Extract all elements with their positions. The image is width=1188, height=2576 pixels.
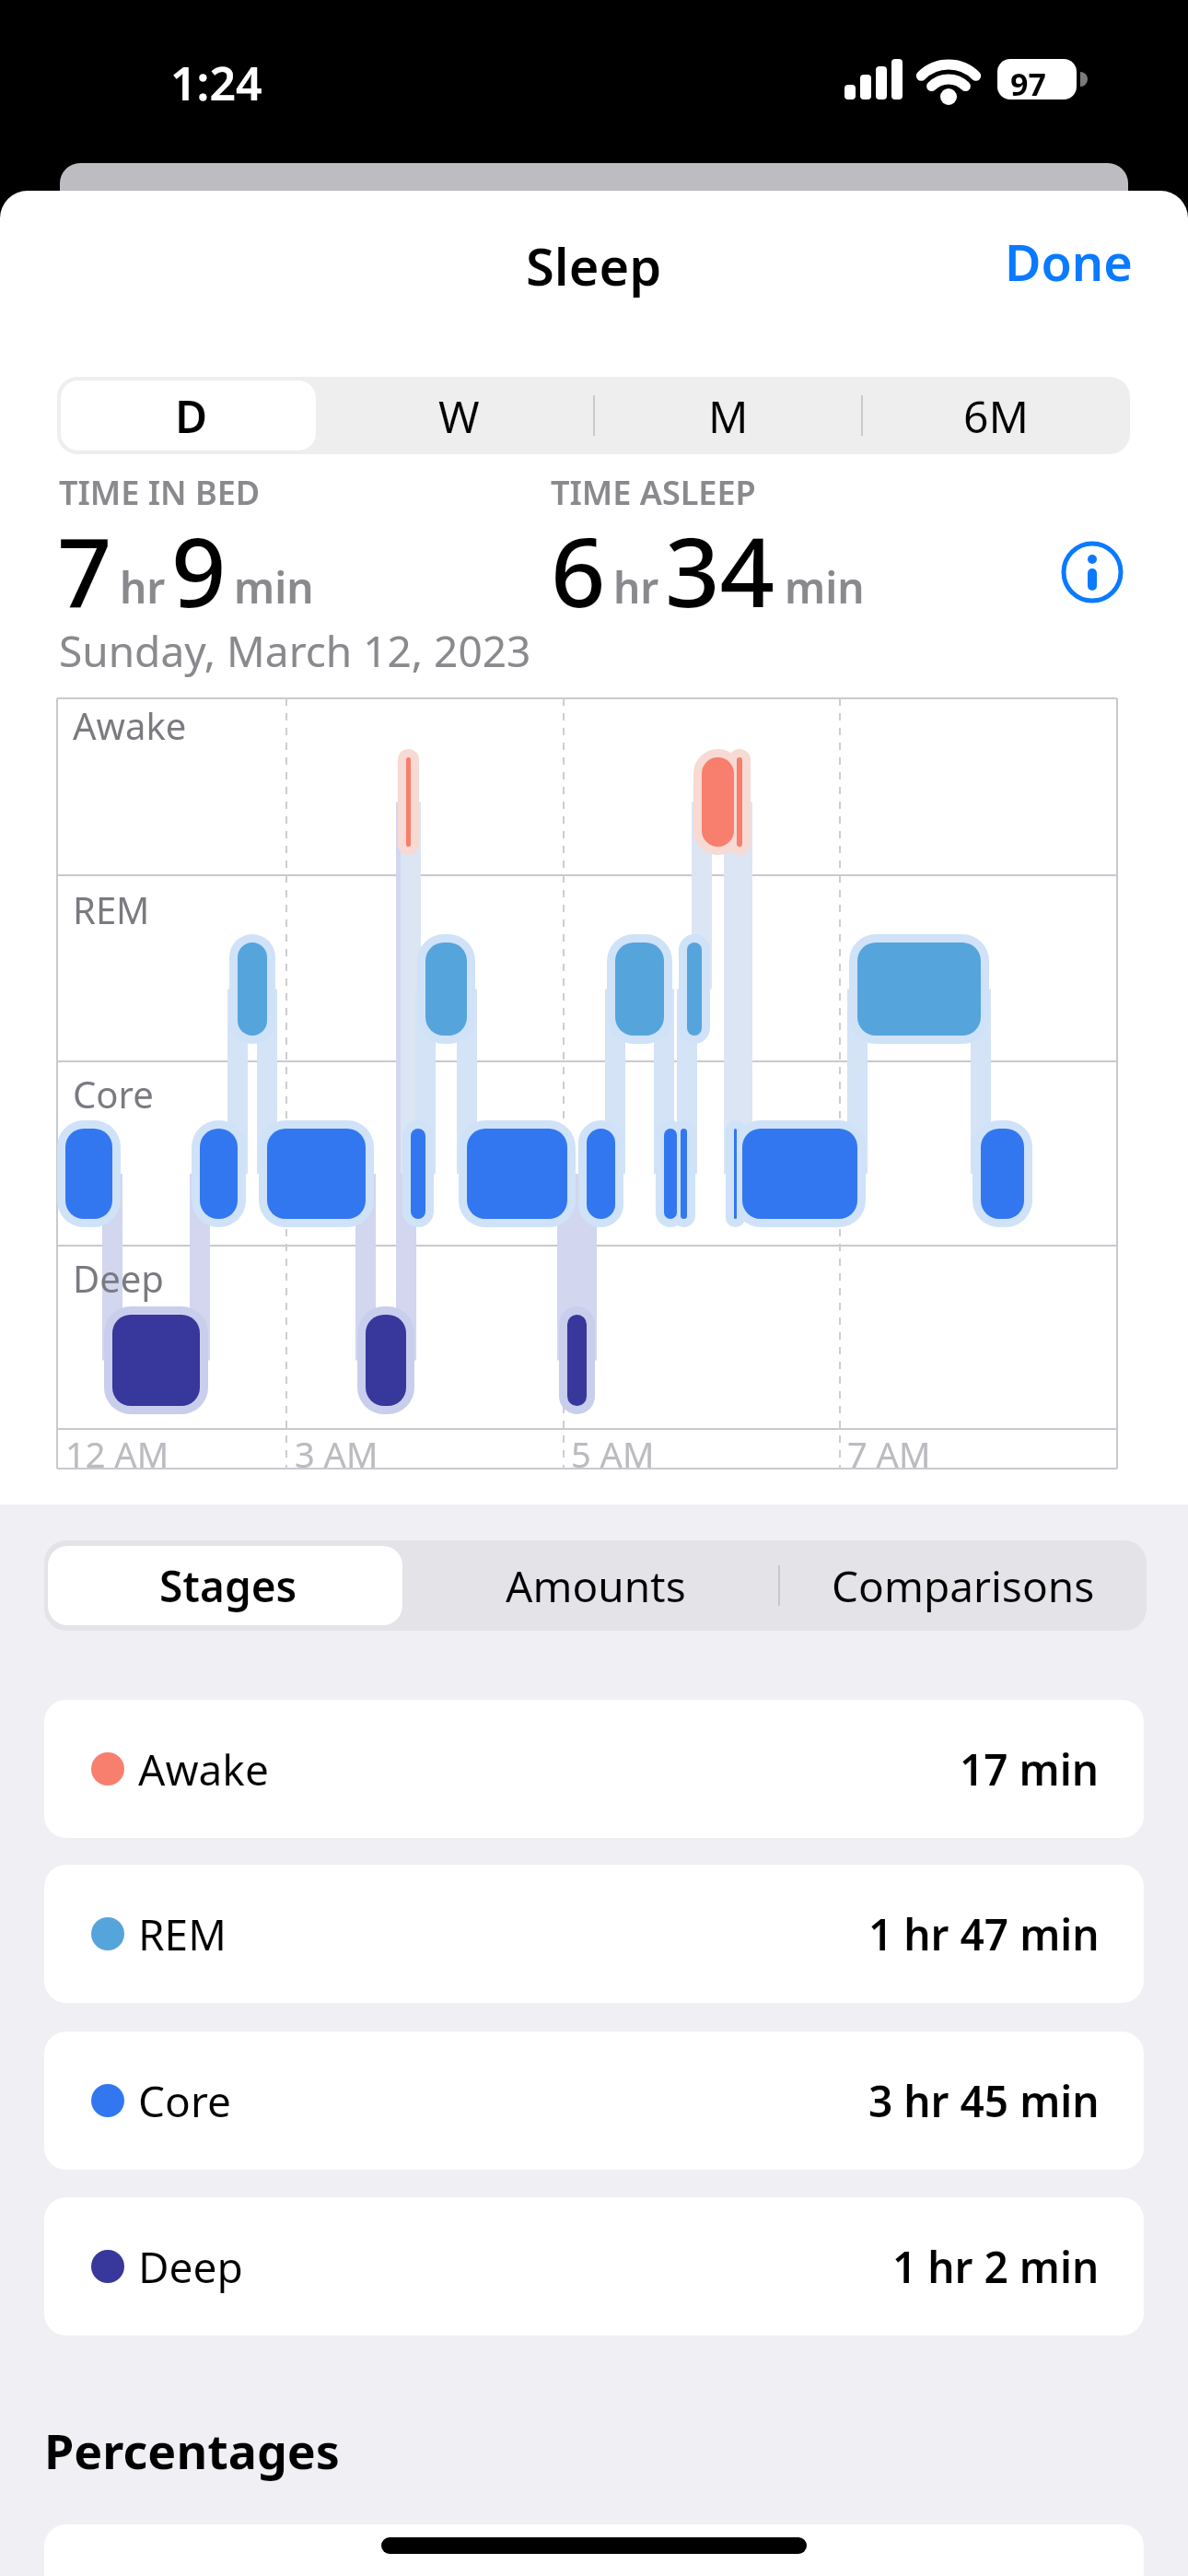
staticText: 34 (665, 505, 775, 636)
staticText: 1 hr 47 min (868, 1905, 1100, 1963)
staticText: 12 AM (65, 1430, 169, 1478)
button[interactable]: Comparisons (779, 1540, 1147, 1631)
staticText: 3 hr 45 min (868, 2072, 1100, 2130)
staticText: min (234, 558, 314, 616)
button[interactable]: Stages (44, 1540, 412, 1631)
staticText: TIME IN BED (59, 470, 261, 515)
button[interactable]: W (325, 377, 593, 454)
staticText: 3 AM (295, 1430, 379, 1478)
staticText: 6M (963, 386, 1029, 446)
staticText: D (175, 386, 208, 446)
staticText: min (785, 558, 865, 616)
staticText: TIME ASLEEP (551, 470, 756, 515)
button[interactable]: Amounts (412, 1540, 779, 1631)
staticText: 97 (1010, 63, 1046, 105)
staticText: 9 (171, 505, 227, 636)
staticText: REM (73, 884, 150, 934)
staticText: 7 (57, 505, 112, 636)
button[interactable]: Done (921, 223, 1133, 300)
staticText: Comparisons (832, 1557, 1095, 1615)
staticText: 7 AM (847, 1430, 931, 1478)
staticText: REM (138, 1905, 227, 1963)
staticText: Deep (73, 1253, 164, 1303)
button[interactable]: M (594, 377, 862, 454)
staticText: Percentages (44, 2418, 340, 2483)
staticText: hr (120, 558, 166, 616)
staticText: Sleep (526, 230, 662, 300)
staticText: Core (73, 1069, 154, 1118)
button[interactable]: 6M (862, 377, 1130, 454)
button[interactable]: D (57, 377, 325, 454)
staticText: Stages (159, 1557, 297, 1615)
staticText: W (438, 386, 480, 446)
staticText: Done (1005, 228, 1133, 296)
staticText: 5 AM (571, 1430, 655, 1478)
staticText: 6 (551, 505, 606, 636)
staticText: Awake (73, 700, 187, 750)
button[interactable]: REM (44, 1865, 1144, 2003)
button[interactable] (1055, 535, 1129, 609)
staticText: Awake (138, 1740, 269, 1798)
staticText: 1:24 (170, 52, 262, 114)
staticText: Core (138, 2072, 231, 2130)
staticText: hr (613, 558, 659, 616)
button[interactable]: Awake (44, 1700, 1144, 1838)
button[interactable]: Core (44, 2032, 1144, 2170)
staticText: Amounts (506, 1557, 686, 1615)
staticText: Sunday, March 12, 2023 (59, 622, 531, 680)
button[interactable]: Deep (44, 2197, 1144, 2336)
staticText: M (708, 386, 749, 446)
staticText: 17 min (960, 1740, 1100, 1798)
staticText: 1 hr 2 min (892, 2238, 1100, 2296)
staticText: Deep (138, 2238, 243, 2296)
